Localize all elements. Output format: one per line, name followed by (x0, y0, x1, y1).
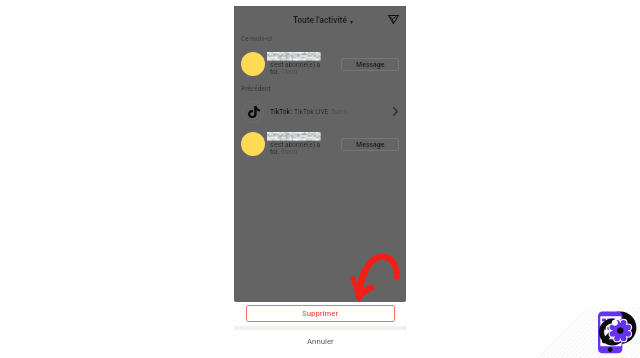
button[interactable]: Supprimer (246, 305, 395, 322)
staticText: Message (356, 141, 385, 149)
staticText: s'est abonné(e) à (270, 61, 321, 69)
staticText: TikTok LIVE (294, 108, 331, 116)
staticText: Message (356, 61, 385, 69)
staticText: Toute l'activité (293, 15, 347, 25)
staticText: Supprimer (302, 309, 339, 318)
staticText: Annuler (307, 337, 334, 346)
staticText: 5sem (331, 108, 348, 116)
staticText: Ce mois-ci (241, 35, 272, 43)
button[interactable]: Annuler (246, 333, 395, 349)
staticText: toi. (270, 68, 281, 76)
staticText: TikTok: (270, 108, 294, 116)
button[interactable]: Toute l'activité (293, 15, 353, 25)
button[interactable]: Message (341, 138, 399, 151)
button[interactable]: Logo (589, 307, 640, 358)
staticText: Précédent (241, 85, 271, 93)
button[interactable]: TikTok: (234, 98, 406, 126)
staticText: s'est abonné(e) à (270, 141, 321, 149)
staticText: 1sem (281, 68, 298, 76)
button[interactable]: Filtrer (386, 12, 400, 26)
staticText: 6sem (281, 148, 298, 156)
staticText: toi. (270, 148, 281, 156)
button[interactable]: s'est abonné(e) à (234, 129, 406, 159)
button[interactable]: Message (341, 58, 399, 71)
button[interactable]: s'est abonné(e) à (234, 49, 406, 79)
